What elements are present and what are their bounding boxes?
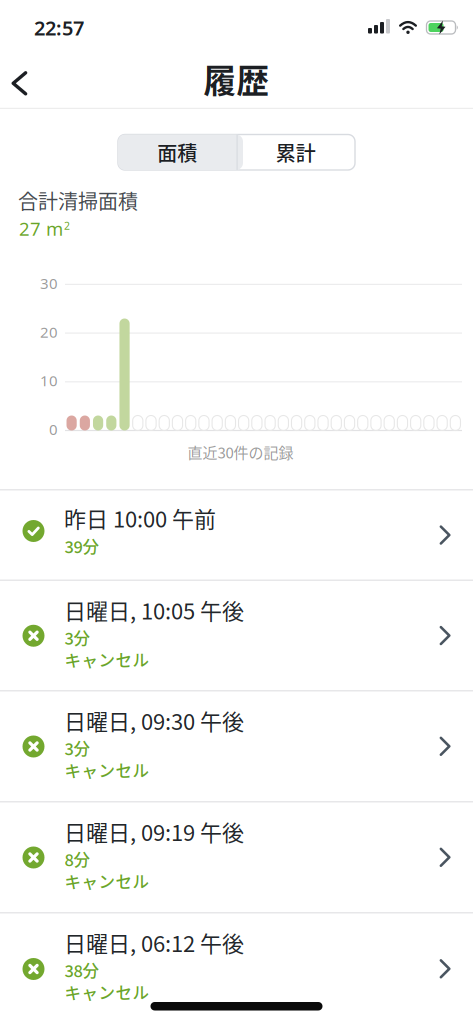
staticText: 0 (49, 419, 58, 439)
staticText: 38分 (64, 958, 99, 982)
button[interactable]: 面積 (118, 134, 236, 170)
staticText: 昨日 10:00 午前 (64, 502, 216, 534)
staticText: 履歴 (203, 55, 269, 102)
staticText: 日曜日, 10:05 午後 (64, 594, 244, 626)
staticText: 39分 (64, 534, 99, 558)
staticText: 8分 (64, 847, 90, 871)
button[interactable]: 日曜日, 10:05 午後 (0, 579, 473, 690)
button[interactable]: 日曜日, 06:12 午後 (0, 912, 473, 1024)
staticText: 日曜日, 09:19 午後 (64, 815, 244, 847)
staticText: 20 (40, 322, 58, 342)
staticText: キャンセル (64, 647, 149, 671)
staticText: 累計 (276, 138, 316, 167)
staticText: 日曜日, 09:30 午後 (64, 704, 244, 736)
staticText: 日曜日, 06:12 午後 (64, 926, 244, 958)
button[interactable]: 累計 (236, 134, 355, 170)
staticText: 10 (40, 370, 58, 391)
staticText: 27 m (19, 216, 63, 241)
button[interactable]: 日曜日, 09:30 午後 (0, 690, 473, 801)
staticText: 面積 (157, 138, 197, 167)
button[interactable]: 昨日 10:00 午前 (0, 489, 473, 579)
staticText: 2 (64, 218, 70, 233)
button[interactable]: Back (0, 65, 28, 102)
staticText: 30 (40, 273, 58, 293)
button[interactable]: 日曜日, 09:19 午後 (0, 801, 473, 912)
staticText: 22:57 (34, 14, 84, 41)
staticText: 直近30件の記録 (187, 441, 293, 463)
staticText: 3分 (64, 736, 90, 760)
staticText: キャンセル (64, 758, 149, 782)
staticText: キャンセル (64, 980, 149, 1004)
staticText: 合計清掃面積 (18, 186, 138, 215)
staticText: キャンセル (64, 869, 149, 893)
staticText: 3分 (64, 625, 90, 649)
